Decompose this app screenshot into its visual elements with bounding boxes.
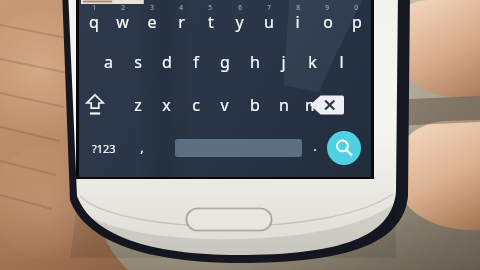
button[interactable]: a [94,46,123,78]
staticText: j [281,51,286,73]
staticText: f [193,51,199,73]
staticText: 1 [92,3,96,12]
staticText: , [140,138,144,156]
button[interactable]: o [313,7,342,37]
button[interactable]: Shift [80,89,110,121]
button[interactable]: , [130,134,154,160]
staticText: ?123 [92,141,116,156]
staticText: 6 [238,3,242,12]
staticText: 4 [179,3,183,12]
staticText: n [279,94,289,116]
button[interactable]: d [152,46,181,78]
button[interactable]: v [210,89,239,121]
button[interactable]: q [79,7,108,37]
button[interactable]: i [283,7,312,37]
button[interactable]: x [152,89,181,121]
staticText: 3 [150,3,154,12]
staticText: g [220,51,230,73]
button[interactable]: f [181,46,210,78]
staticText: v [220,94,229,116]
staticText: t [208,11,214,33]
staticText: m [305,94,320,116]
staticText: w [116,11,129,33]
staticText: k [308,51,317,73]
button[interactable]: g [210,46,239,78]
button[interactable]: m [298,89,327,121]
button[interactable]: . [304,134,326,158]
staticText: 7 [267,3,271,12]
staticText: s [134,51,142,73]
button[interactable]: Search [327,131,361,165]
staticText: p [352,11,362,33]
button[interactable]: ?123 [83,136,125,160]
staticText: x [162,94,171,116]
staticText: l [339,51,344,73]
staticText: 9 [325,3,329,12]
button[interactable]: z [123,89,152,121]
staticText: u [264,11,274,33]
button[interactable]: u [254,7,283,37]
staticText: q [89,11,99,33]
staticText: c [192,94,200,116]
button[interactable]: y [225,7,254,37]
button[interactable]: Backspace [310,94,344,116]
button[interactable]: p [342,7,371,37]
staticText: d [162,51,172,73]
staticText: y [235,11,244,33]
staticText: 8 [296,3,300,12]
staticText: 2 [121,3,125,12]
button[interactable]: l [327,46,356,78]
button[interactable]: s [123,46,152,78]
button[interactable]: h [240,46,269,78]
button[interactable]: k [298,46,327,78]
button[interactable]: n [269,89,298,121]
button[interactable]: w [108,7,137,37]
staticText: 0 [354,3,358,12]
staticText: 5 [208,3,212,12]
staticText: r [178,11,185,33]
button[interactable]: c [181,89,210,121]
button[interactable]: r [167,7,196,37]
button[interactable]: b [240,89,269,121]
staticText: z [134,94,142,116]
staticText: e [147,11,157,33]
staticText: b [250,94,260,116]
button[interactable]: t [196,7,225,37]
button[interactable]: j [269,46,298,78]
button[interactable]: e [137,7,166,37]
staticText: o [323,11,333,33]
staticText: h [250,51,260,73]
staticText: i [295,11,300,33]
staticText: . [313,137,317,155]
staticText: a [104,51,113,73]
